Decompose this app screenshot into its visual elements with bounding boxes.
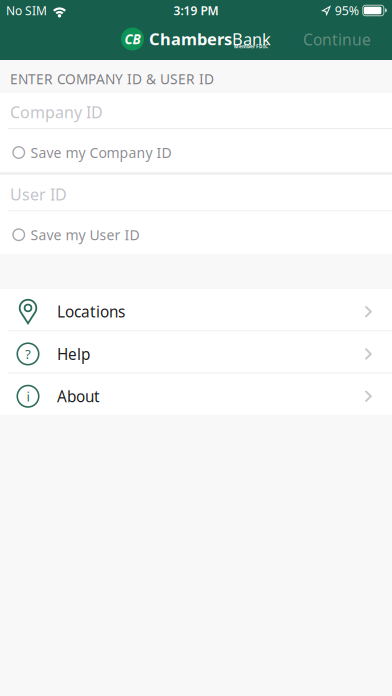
staticText: Continue xyxy=(303,29,371,50)
staticText: Locations xyxy=(57,301,125,322)
staticText: 3:19 PM xyxy=(173,2,218,19)
staticText: ENTER COMPANY ID & USER ID xyxy=(10,70,214,88)
button[interactable]: Save my User ID xyxy=(0,211,392,254)
button[interactable]: i xyxy=(0,374,392,415)
staticText: ? xyxy=(25,345,31,363)
staticText: i xyxy=(26,387,29,405)
staticText: CB xyxy=(124,30,140,48)
staticText: Help xyxy=(57,343,90,364)
button[interactable]: Company ID xyxy=(0,93,392,128)
staticText: Chambers xyxy=(149,28,232,50)
staticText: User ID xyxy=(10,183,67,205)
staticText: Save my User ID xyxy=(30,225,139,244)
button[interactable]: Locations xyxy=(0,289,392,330)
button[interactable]: User ID xyxy=(0,175,392,210)
staticText: Company ID xyxy=(10,101,103,123)
staticText: Bank xyxy=(232,28,271,50)
button[interactable]: Save my Company ID xyxy=(0,129,392,172)
button[interactable]: Continue xyxy=(303,29,371,50)
staticText: Member FDIC xyxy=(234,43,268,50)
staticText: Save my Company ID xyxy=(30,143,171,162)
staticText: 95% xyxy=(335,2,359,19)
staticText: About xyxy=(57,386,100,407)
button[interactable]: ? xyxy=(0,331,392,373)
staticText: No SIM xyxy=(6,2,47,19)
